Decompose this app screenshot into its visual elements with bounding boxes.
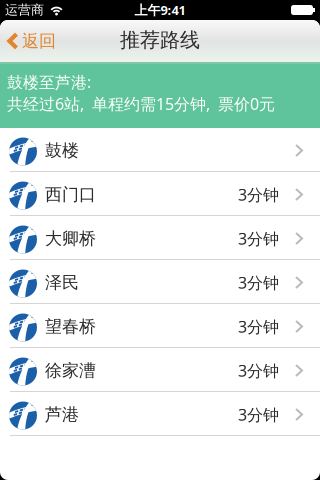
staticText: 3分钟	[238, 184, 279, 205]
staticText: 3分钟	[238, 360, 279, 381]
button[interactable]: 大卿桥	[0, 216, 320, 260]
staticText: 鼓楼	[45, 140, 79, 161]
staticText: 3分钟	[238, 228, 279, 249]
button[interactable]: 鼓楼	[0, 128, 320, 172]
button[interactable]: 芦港	[0, 392, 320, 436]
staticText: 泽民	[45, 272, 79, 293]
staticText: 3分钟	[238, 272, 279, 293]
staticText: 徐家漕	[45, 360, 96, 381]
staticText: 望春桥	[45, 316, 96, 337]
staticText: 鼓楼至芦港:	[7, 71, 91, 93]
staticText: 大卿桥	[45, 228, 96, 249]
staticText: 运营商	[5, 2, 44, 18]
button[interactable]: 泽民	[0, 260, 320, 304]
staticText: 3分钟	[238, 404, 279, 425]
button[interactable]: 徐家漕	[0, 348, 320, 392]
button[interactable]: 西门口	[0, 172, 320, 216]
staticText: 芦港	[45, 404, 79, 425]
staticText: 3分钟	[238, 316, 279, 337]
staticText: 推荐路线	[120, 27, 200, 53]
staticText: 返回	[22, 30, 56, 52]
button[interactable]: 返回	[0, 20, 62, 62]
staticText: 西门口	[45, 184, 96, 205]
button[interactable]: 望春桥	[0, 304, 320, 348]
staticText: 上午9:41	[134, 1, 185, 19]
staticText: 共经过6站, 单程约需15分钟, 票价0元	[7, 93, 275, 115]
